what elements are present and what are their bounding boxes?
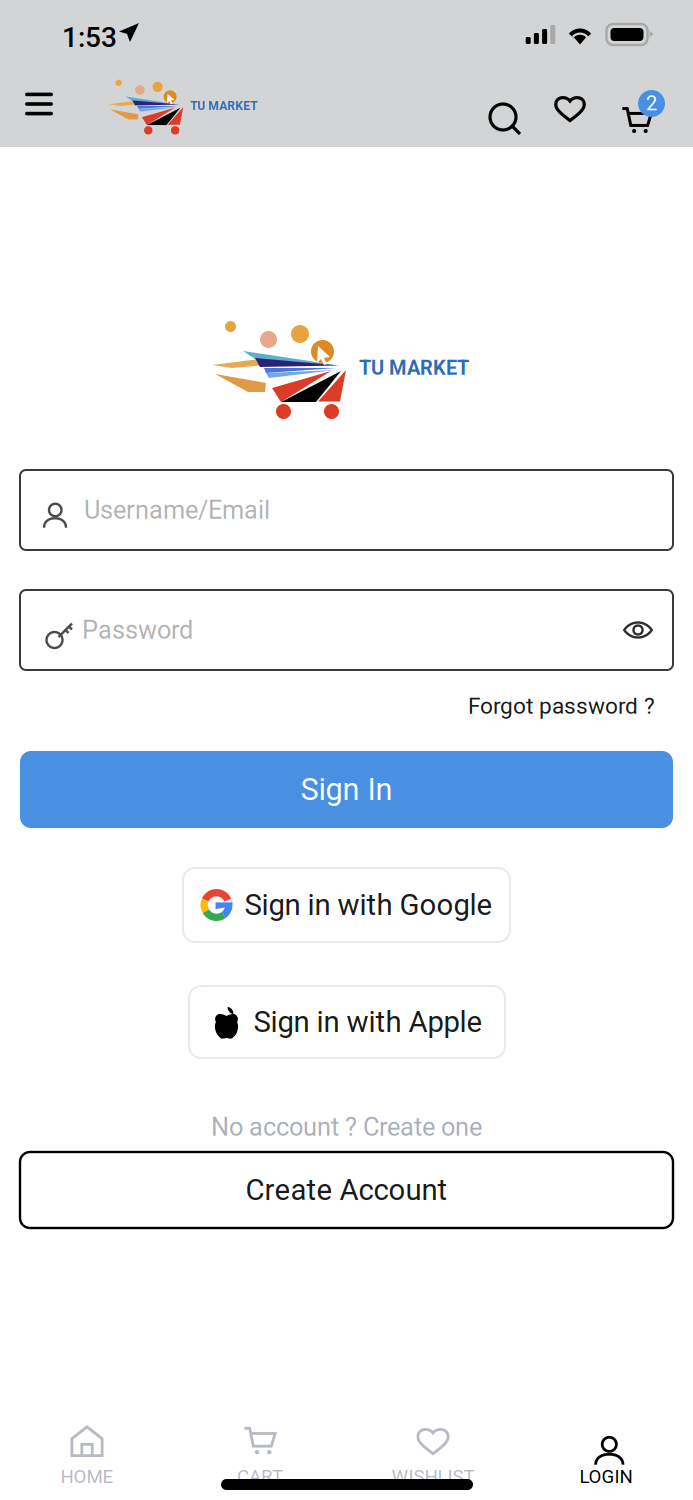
staticText: WISHLIST bbox=[391, 1466, 474, 1487]
staticText: Forgot password ? bbox=[468, 693, 655, 719]
button[interactable]: Sign In bbox=[20, 751, 673, 828]
staticText: Username/Email bbox=[84, 495, 270, 525]
button[interactable]: Search bbox=[473, 87, 517, 131]
staticText: HOME bbox=[60, 1466, 113, 1487]
button[interactable]: LOGIN bbox=[519, 1422, 692, 1488]
button[interactable]: Cart bbox=[611, 82, 663, 134]
staticText: TU MARKET bbox=[190, 99, 257, 113]
button[interactable]: Wishlist bbox=[548, 87, 592, 131]
staticText: Sign In bbox=[300, 771, 392, 807]
staticText: LOGIN bbox=[579, 1466, 632, 1487]
staticText: Sign in with Google bbox=[244, 888, 492, 922]
button[interactable]: Sign in with Apple bbox=[189, 986, 505, 1058]
button[interactable]: Menu bbox=[13, 76, 65, 132]
staticText: 1:53 bbox=[62, 21, 117, 54]
button[interactable]: Forgot password ? bbox=[455, 688, 655, 724]
staticText: No account ? Create one bbox=[211, 1112, 482, 1142]
button[interactable]: HOME bbox=[0, 1422, 173, 1488]
button[interactable]: WISHLIST bbox=[346, 1422, 519, 1488]
button[interactable]: CART bbox=[173, 1422, 346, 1488]
button[interactable]: Show password bbox=[615, 607, 661, 653]
staticText: 2 bbox=[646, 92, 657, 115]
staticText: Password bbox=[82, 615, 193, 645]
staticText: CART bbox=[237, 1466, 283, 1487]
staticText: Sign in with Apple bbox=[253, 1005, 482, 1039]
staticText: TU MARKET bbox=[359, 356, 469, 380]
button[interactable]: Create Account bbox=[20, 1152, 673, 1228]
staticText: Create Account bbox=[245, 1173, 447, 1207]
button[interactable]: Sign in with Google bbox=[183, 868, 510, 942]
